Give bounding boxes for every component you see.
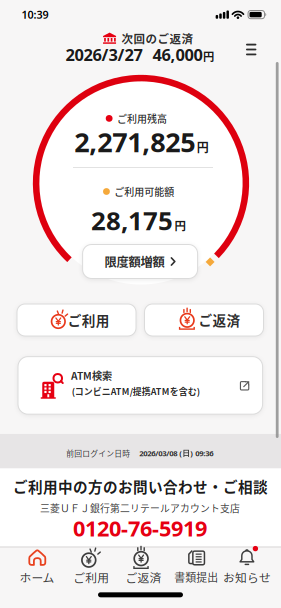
button[interactable]: ご返済 xyxy=(115,546,167,588)
button[interactable]: ご返済 xyxy=(144,304,263,336)
staticText: (コンビニATM/提携ATMを含む) xyxy=(72,385,200,397)
staticText: 円 xyxy=(175,217,186,233)
staticText: 前回ログイン日時 xyxy=(66,448,130,459)
button[interactable]: ホーム xyxy=(11,546,63,588)
staticText: ご利用残高 xyxy=(117,111,167,126)
button[interactable]: 0120-76-5919 xyxy=(73,513,207,543)
button[interactable] xyxy=(239,37,263,61)
button[interactable]: ご利用 xyxy=(64,546,116,588)
staticText: 円 xyxy=(203,48,214,64)
staticText: 46,000 xyxy=(152,43,202,66)
button[interactable]: 限度額増額 xyxy=(83,244,198,278)
staticText: 限度額増額 xyxy=(105,253,165,270)
staticText: ホーム xyxy=(19,568,54,586)
staticText: 2026/03/08 (日) 09:36 xyxy=(139,448,213,458)
button[interactable]: ご利用 xyxy=(17,304,136,336)
staticText: ご返済 xyxy=(199,310,241,330)
staticText: 2,271,825 xyxy=(74,123,195,160)
staticText: 2026/3/27 xyxy=(65,43,142,66)
staticText: 28,175 xyxy=(91,203,173,238)
staticText: ご利用 xyxy=(68,310,110,330)
button[interactable]: 書類提出 xyxy=(170,546,222,588)
staticText: 三菱ＵＦＪ銀行第二リテールアカウント支店 xyxy=(40,501,240,515)
button[interactable]: ATM検索 xyxy=(18,357,263,414)
staticText: ご利用可能額 xyxy=(114,184,174,199)
staticText: 円 xyxy=(197,138,209,156)
staticText: お知らせ xyxy=(223,568,271,586)
staticText: 10:39 xyxy=(21,7,48,22)
staticText: ご利用中の方のお問い合わせ・ご相談 xyxy=(13,476,268,497)
staticText: ATM検索 xyxy=(71,368,112,383)
staticText: ご返済 xyxy=(125,568,161,586)
staticText: 書類提出 xyxy=(174,569,218,585)
staticText: 0120-76-5919 xyxy=(73,513,207,543)
staticText: 次回のご返済 xyxy=(122,30,194,47)
staticText: ご利用 xyxy=(73,568,109,586)
button[interactable]: お知らせ xyxy=(221,546,273,588)
